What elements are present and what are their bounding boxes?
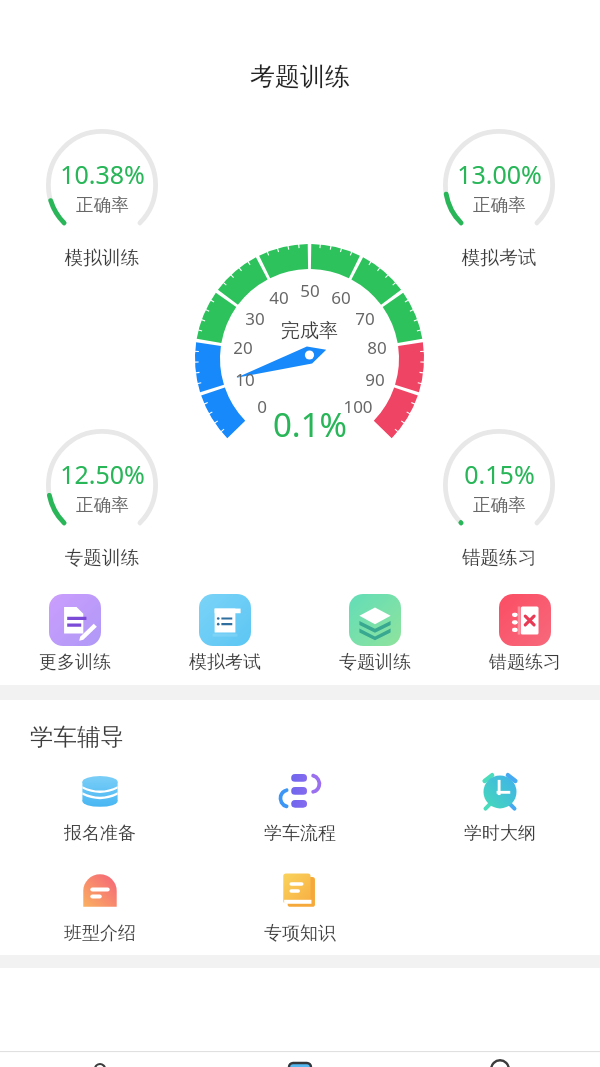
- button[interactable]: 我的: [400, 1051, 600, 1067]
- staticText: 10.38%: [60, 157, 145, 191]
- staticText: 错题练习: [439, 546, 559, 570]
- staticText: 完成率: [281, 319, 338, 343]
- staticText: 专项知识: [225, 922, 375, 945]
- button[interactable]: 题库: [200, 1051, 400, 1067]
- button[interactable]: 学时大纲: [425, 769, 575, 850]
- staticText: 0.1%: [250, 402, 370, 447]
- staticText: 100: [343, 395, 373, 418]
- staticText: 90: [365, 368, 385, 391]
- button[interactable]: 模拟考试: [150, 594, 300, 679]
- button[interactable]: 错题练习: [450, 594, 600, 679]
- staticText: 13.00%: [457, 157, 542, 191]
- button[interactable]: 报名准备: [25, 769, 175, 850]
- staticText: 0.15%: [464, 457, 535, 491]
- staticText: 报名准备: [25, 822, 175, 845]
- staticText: 20: [233, 336, 253, 359]
- staticText: 班型介绍: [25, 922, 175, 945]
- staticText: 专题训练: [300, 651, 450, 674]
- staticText: 正确率: [76, 194, 129, 216]
- button[interactable]: 10.38%: [46, 129, 158, 241]
- button[interactable]: 专题训练: [300, 594, 450, 679]
- staticText: 学时大纲: [425, 822, 575, 845]
- staticText: 10: [235, 368, 255, 391]
- staticText: 正确率: [473, 194, 526, 216]
- staticText: 考题训练: [0, 61, 600, 92]
- staticText: 模拟考试: [439, 246, 559, 270]
- staticText: 正确率: [76, 494, 129, 516]
- button[interactable]: 0.15%: [443, 429, 555, 541]
- staticText: 错题练习: [450, 651, 600, 674]
- button[interactable]: 班型介绍: [25, 869, 175, 950]
- button[interactable]: 12.50%: [46, 429, 158, 541]
- button[interactable]: 首页: [0, 1051, 200, 1067]
- staticText: 0: [257, 395, 267, 418]
- staticText: 正确率: [473, 494, 526, 516]
- staticText: 60: [331, 286, 351, 309]
- button[interactable]: 更多训练: [0, 594, 150, 679]
- button[interactable]: 13.00%: [443, 129, 555, 241]
- staticText: 模拟考试: [150, 651, 300, 674]
- button[interactable]: 专项知识: [225, 869, 375, 950]
- staticText: 50: [300, 279, 320, 302]
- staticText: 学车辅导: [30, 722, 124, 752]
- button[interactable]: 学车流程: [225, 769, 375, 850]
- staticText: 12.50%: [60, 457, 145, 491]
- staticText: 学车流程: [225, 822, 375, 845]
- staticText: 专题训练: [42, 546, 162, 570]
- staticText: 模拟训练: [42, 246, 162, 270]
- staticText: 30: [245, 307, 265, 330]
- staticText: 80: [367, 336, 387, 359]
- staticText: 更多训练: [0, 651, 150, 674]
- staticText: 70: [355, 307, 375, 330]
- staticText: 40: [269, 286, 289, 309]
